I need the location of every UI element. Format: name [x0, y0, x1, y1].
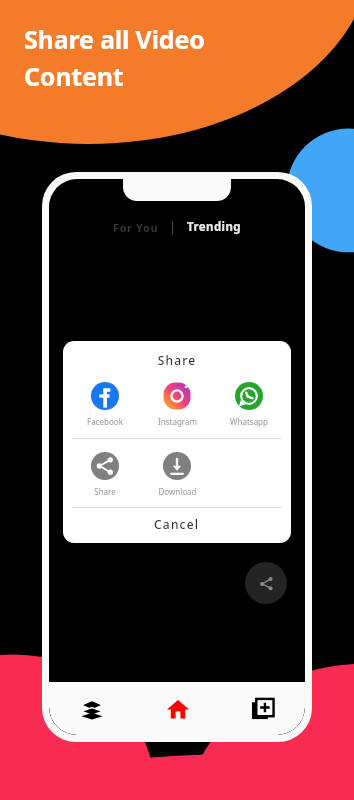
- staticText: Whatsapp: [230, 416, 268, 427]
- button[interactable]: Add: [220, 682, 305, 735]
- button[interactable]: Home: [135, 682, 220, 735]
- staticText: Cancel: [154, 516, 200, 532]
- staticText: Trending: [187, 219, 241, 235]
- button[interactable]: Cancel: [63, 508, 291, 540]
- staticText: Facebook: [87, 416, 123, 427]
- button[interactable]: Whatsapp: [213, 380, 285, 429]
- staticText: Content: [24, 59, 124, 93]
- button[interactable]: Instagram: [141, 380, 213, 429]
- staticText: Share: [94, 486, 116, 497]
- button[interactable]: Library: [49, 682, 135, 735]
- staticText: Instagram: [158, 416, 197, 427]
- staticText: Share all Video: [24, 22, 205, 56]
- button[interactable]: Share: [69, 450, 141, 499]
- staticText: Share: [63, 352, 291, 368]
- button[interactable]: For You: [109, 218, 163, 237]
- button[interactable]: Download: [141, 450, 213, 499]
- staticText: Download: [158, 486, 197, 497]
- button[interactable]: Facebook: [69, 380, 141, 429]
- button[interactable]: Trending: [183, 217, 245, 237]
- button[interactable]: Share: [245, 562, 287, 604]
- staticText: For You: [113, 220, 159, 235]
